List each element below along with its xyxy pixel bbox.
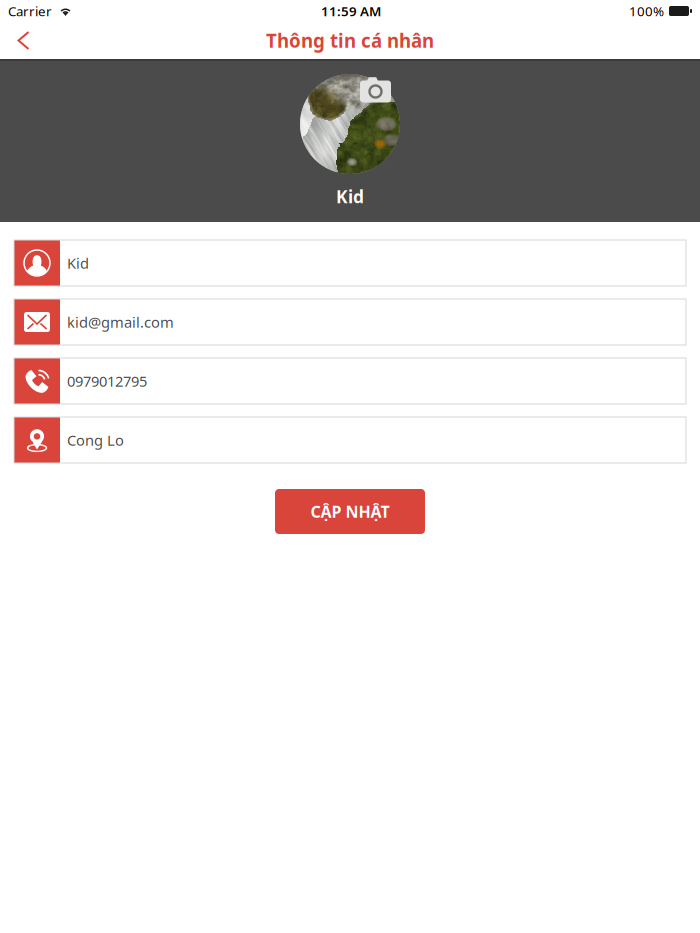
button[interactable]: Back: [0, 24, 47, 57]
staticText: 11:59 AM: [321, 2, 381, 20]
staticText: Kid: [67, 253, 89, 273]
staticText: 0979012795: [67, 371, 147, 391]
staticText: Thông tin cá nhân: [266, 28, 434, 53]
button[interactable]: Change profile photo: [359, 76, 391, 103]
staticText: kid@gmail.com: [67, 312, 174, 332]
staticText: CẬP NHẬT: [310, 501, 389, 522]
staticText: 100%: [629, 2, 664, 20]
staticText: Carrier: [8, 2, 52, 20]
staticText: Cong Lo: [67, 430, 124, 450]
staticText: Kid: [336, 185, 364, 208]
button[interactable]: CẬP NHẬT: [275, 489, 425, 534]
